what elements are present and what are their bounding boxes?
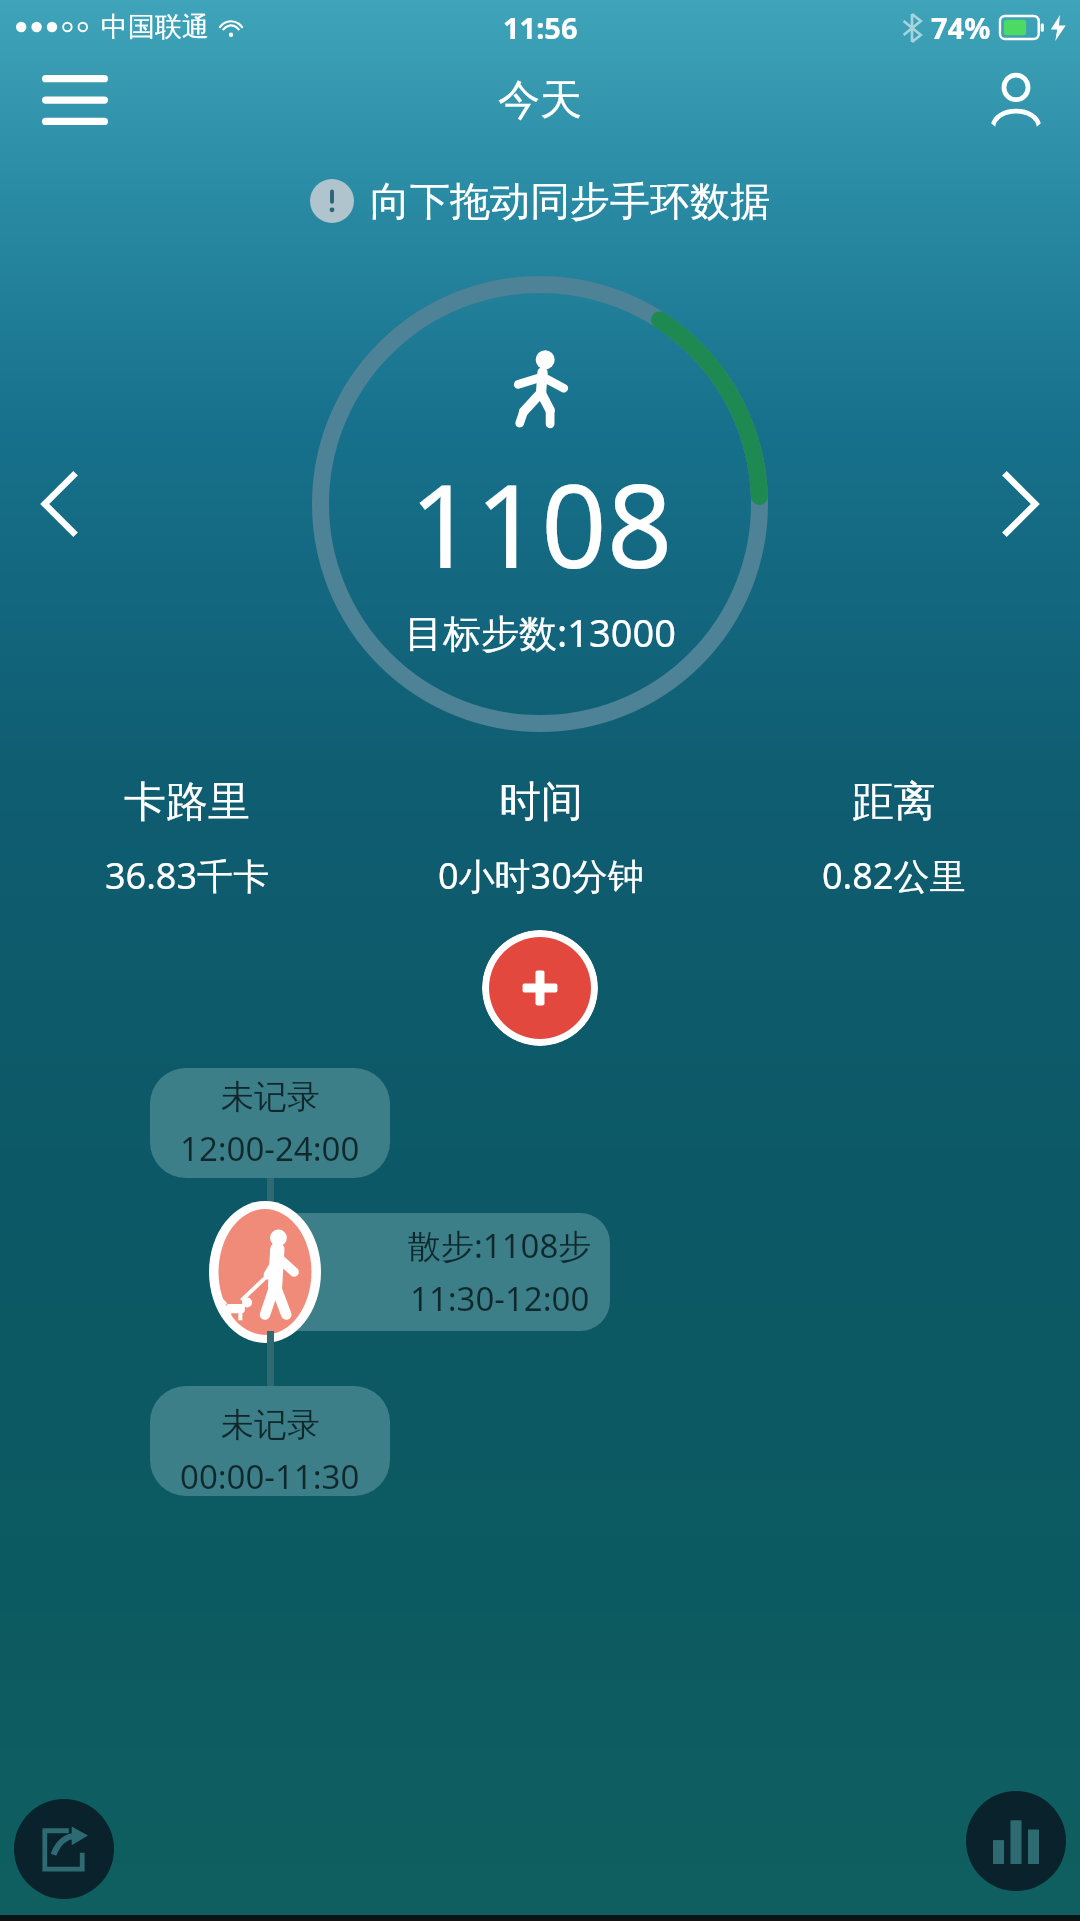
- staticText: 目标步数:13000: [405, 606, 676, 658]
- staticText: 00:00-11:30: [180, 1454, 360, 1496]
- staticText: 距离: [852, 776, 936, 829]
- staticText: 时间: [499, 776, 583, 829]
- staticText: 12:00-24:00: [180, 1126, 360, 1171]
- button[interactable]: Add record: [482, 930, 598, 1046]
- staticText: 散步:1108步: [408, 1223, 592, 1268]
- button[interactable]: 1108: [310, 274, 770, 734]
- button[interactable]: Share: [14, 1799, 114, 1899]
- button[interactable]: Statistics: [966, 1791, 1066, 1891]
- staticText: 11:56: [503, 8, 578, 47]
- staticText: 11:30-12:00: [410, 1276, 590, 1321]
- staticText: 今天: [498, 74, 582, 127]
- staticText: 向下拖动同步手环数据: [370, 176, 770, 226]
- button[interactable]: Next day: [984, 453, 1058, 555]
- staticText: 卡路里: [124, 776, 250, 829]
- button[interactable]: 距离: [717, 772, 1070, 904]
- button[interactable]: Menu: [34, 67, 116, 133]
- button[interactable]: 散步:1108步: [265, 1213, 610, 1331]
- button[interactable]: 未记录: [150, 1386, 390, 1496]
- staticText: 74%: [931, 8, 991, 47]
- staticText: 36.83千卡: [105, 851, 270, 900]
- button[interactable]: Profile: [982, 66, 1050, 134]
- staticText: 未记录: [221, 1404, 320, 1446]
- staticText: 0.82公里: [822, 851, 966, 900]
- staticText: 中国联通: [101, 10, 209, 44]
- staticText: 未记录: [221, 1076, 320, 1118]
- button[interactable]: 未记录: [150, 1068, 390, 1178]
- button[interactable]: 卡路里: [10, 772, 364, 904]
- button[interactable]: 向下拖动同步手环数据: [0, 176, 1080, 226]
- button[interactable]: Previous day: [22, 453, 96, 555]
- staticText: 0小时30分钟: [438, 851, 644, 900]
- button[interactable]: Walking activity: [209, 1201, 321, 1343]
- button[interactable]: 时间: [364, 772, 717, 904]
- staticText: 1108: [409, 445, 673, 602]
